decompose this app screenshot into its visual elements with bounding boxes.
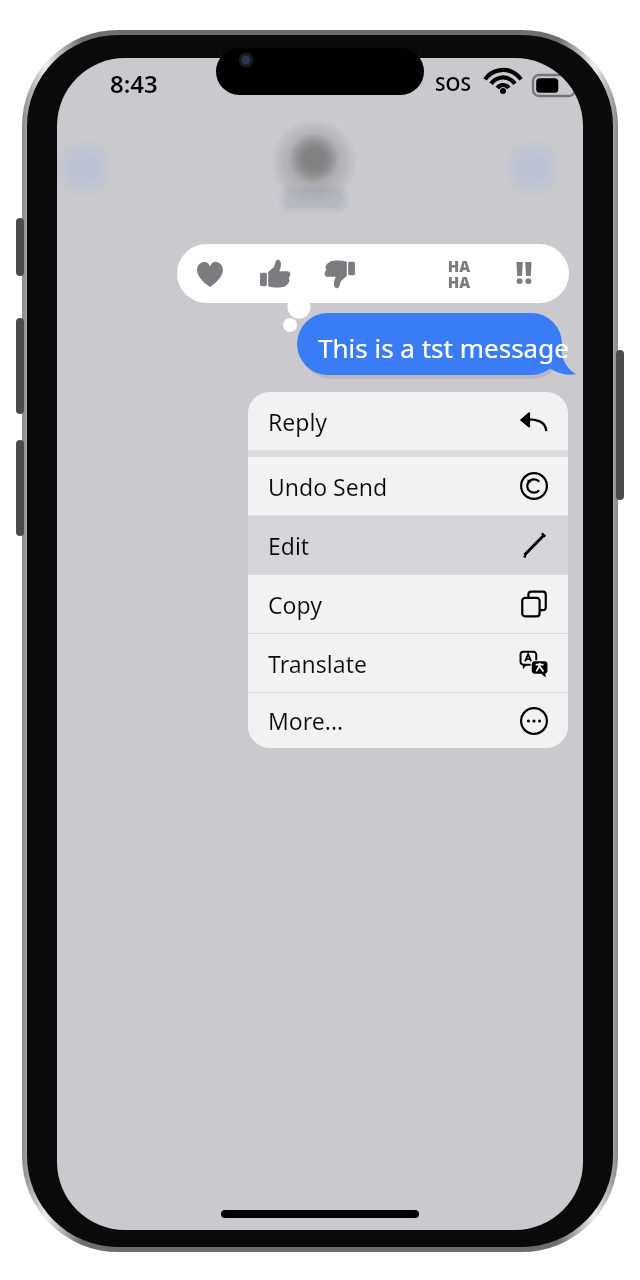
button[interactable]: More... xyxy=(248,693,568,748)
button[interactable]: Love xyxy=(177,244,242,303)
staticText: HA HA xyxy=(435,256,483,292)
button[interactable]: Question xyxy=(502,244,567,303)
button[interactable]: Undo Send xyxy=(248,457,568,515)
button[interactable]: Reply xyxy=(248,392,568,450)
staticText: ? xyxy=(565,252,569,294)
button[interactable]: Translate xyxy=(248,634,568,692)
button[interactable]: Like xyxy=(242,244,307,303)
button[interactable]: Copy xyxy=(248,575,568,633)
staticText: 8:43 xyxy=(110,67,158,100)
button[interactable]: Exclamation xyxy=(437,244,502,303)
staticText: SOS xyxy=(435,71,471,97)
button[interactable]: Dislike xyxy=(307,244,372,303)
button[interactable] xyxy=(297,313,577,375)
staticText: Reply xyxy=(268,406,328,437)
staticText: Edit xyxy=(268,530,310,561)
staticText: Translate xyxy=(268,648,367,679)
staticText: This is a tst message xyxy=(318,330,569,365)
staticText: More... xyxy=(268,705,344,736)
staticText: Undo Send xyxy=(268,471,388,502)
staticText: Copy xyxy=(268,589,322,620)
button[interactable]: Edit xyxy=(248,516,568,574)
staticText: !! xyxy=(500,252,548,293)
